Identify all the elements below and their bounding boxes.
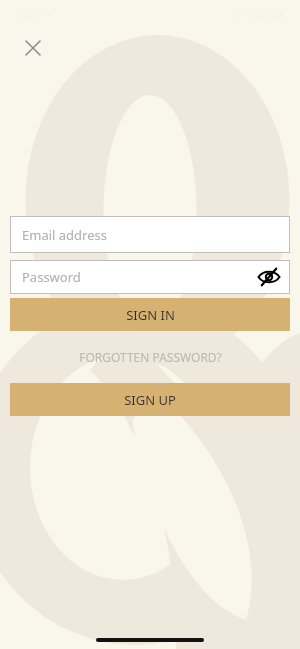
button[interactable]: SIGN IN	[10, 298, 290, 331]
staticText: SIGN IN	[126, 306, 175, 324]
button[interactable]: SIGN UP	[10, 383, 290, 416]
staticText: FORGOTTEN PASSWORD?	[79, 349, 222, 365]
button[interactable]: FORGOTTEN PASSWORD?	[10, 331, 290, 383]
button[interactable]: Email address	[10, 216, 290, 253]
button[interactable]: Close	[18, 33, 48, 63]
staticText: Email address	[22, 226, 107, 244]
button[interactable]: Show password	[254, 262, 284, 292]
staticText: Password	[22, 268, 81, 286]
button[interactable]: Password	[10, 260, 290, 294]
staticText: SIGN UP	[124, 391, 176, 409]
